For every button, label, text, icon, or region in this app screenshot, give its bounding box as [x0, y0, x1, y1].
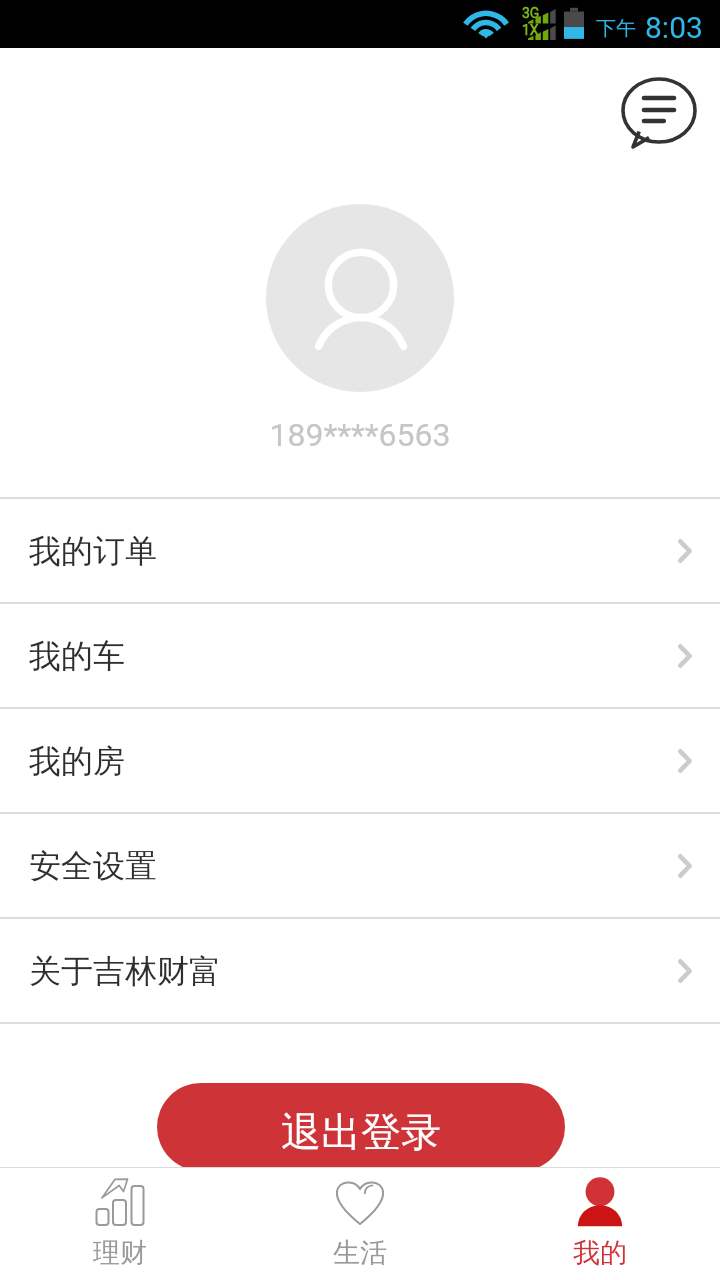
- staticText: 安全设置: [29, 846, 678, 886]
- button[interactable]: 生活: [240, 1167, 480, 1280]
- staticText: 我的: [573, 1236, 627, 1270]
- button[interactable]: 退出登录: [157, 1083, 565, 1171]
- staticText: 我的房: [29, 741, 678, 781]
- staticText: 关于吉林财富: [29, 951, 678, 991]
- staticText: 189****6563: [0, 416, 720, 454]
- button[interactable]: 关于吉林财富: [0, 919, 720, 1022]
- staticText: 理财: [93, 1236, 147, 1270]
- button[interactable]: 我的订单: [0, 499, 720, 602]
- staticText: 我的车: [29, 636, 678, 676]
- staticText: 3G: [522, 5, 540, 21]
- button[interactable]: 安全设置: [0, 814, 720, 917]
- button[interactable]: Profile photo: [266, 204, 454, 392]
- staticText: 1X: [522, 22, 539, 38]
- button[interactable]: 我的车: [0, 604, 720, 707]
- button[interactable]: 理财: [0, 1167, 240, 1280]
- button[interactable]: Messages: [611, 67, 707, 159]
- button[interactable]: 我的房: [0, 709, 720, 812]
- button[interactable]: 我的: [480, 1167, 720, 1280]
- staticText: 生活: [333, 1236, 387, 1270]
- staticText: 下午: [596, 16, 636, 41]
- staticText: 我的订单: [29, 531, 678, 571]
- staticText: 退出登录: [281, 1107, 441, 1157]
- staticText: 8:03: [645, 10, 703, 45]
